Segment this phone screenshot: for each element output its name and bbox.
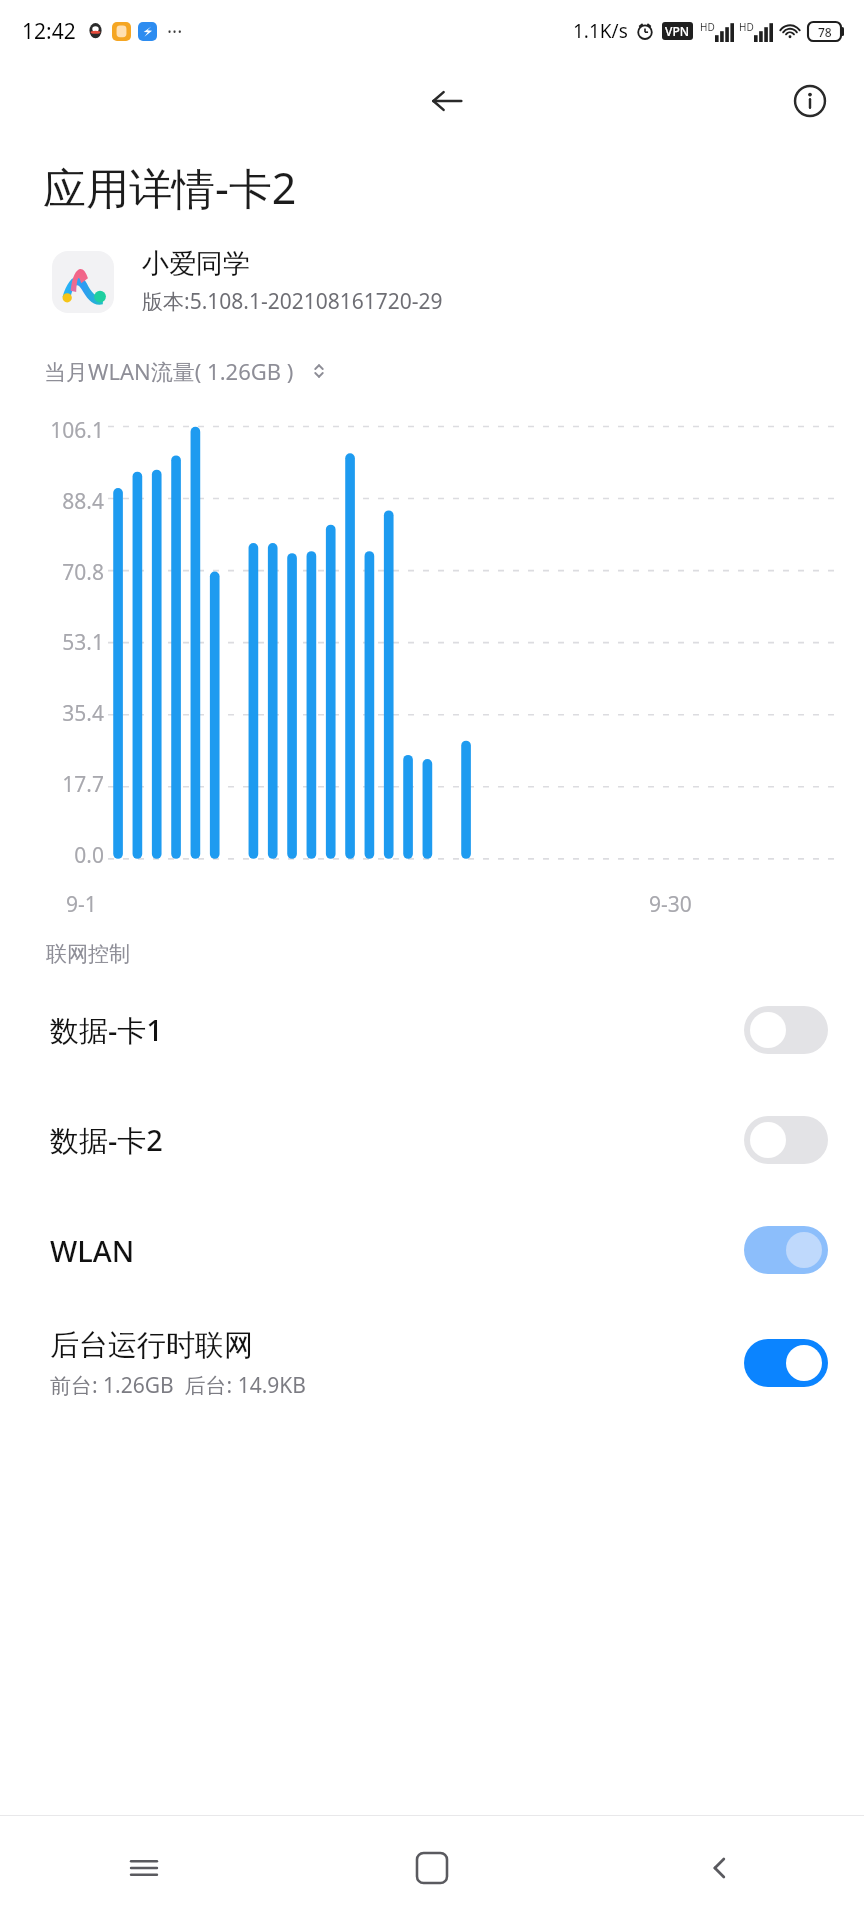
staticText: 数据-卡1 bbox=[50, 1010, 163, 1050]
staticText: 78 bbox=[818, 24, 832, 40]
staticText: 0.0 bbox=[74, 841, 104, 870]
staticText: 1.1K/s bbox=[573, 18, 628, 44]
staticText: 当月WLAN流量( 1.26GB ) bbox=[44, 356, 294, 386]
staticText: 35.4 bbox=[62, 699, 104, 728]
staticText: 应用详情-卡2 bbox=[43, 158, 297, 217]
staticText: 版本:5.108.1-202108161720-29 bbox=[142, 287, 443, 316]
staticText: 后台运行时联网 bbox=[50, 1327, 253, 1364]
staticText: 17.7 bbox=[62, 770, 104, 799]
staticText: 数据-卡2 bbox=[50, 1120, 163, 1160]
button[interactable]: Back bbox=[576, 1816, 864, 1920]
staticText: 12:42 bbox=[22, 17, 76, 46]
staticText: 88.4 bbox=[62, 487, 104, 516]
button[interactable]: 数据-卡1 bbox=[0, 975, 864, 1085]
button[interactable]: Toggle bbox=[744, 1226, 828, 1274]
staticText: 9-30 bbox=[649, 890, 692, 919]
staticText: 9-1 bbox=[66, 890, 97, 919]
staticText: 53.1 bbox=[62, 628, 104, 657]
staticText: HD bbox=[739, 20, 754, 34]
button[interactable]: 后台运行时联网 bbox=[0, 1305, 864, 1421]
button[interactable]: Toggle bbox=[744, 1116, 828, 1164]
staticText: 前台: 1.26GB 后台: 14.9KB bbox=[50, 1371, 307, 1400]
staticText: 小爱同学 bbox=[142, 247, 250, 281]
staticText: HD bbox=[700, 20, 715, 34]
staticText: VPN bbox=[665, 23, 690, 39]
button[interactable]: 数据-卡2 bbox=[0, 1085, 864, 1195]
button[interactable]: Recents bbox=[0, 1816, 288, 1920]
button[interactable]: 小爱同学 bbox=[0, 243, 864, 320]
staticText: 106.1 bbox=[50, 416, 104, 445]
button[interactable]: 当月WLAN流量( 1.26GB ) bbox=[32, 350, 342, 392]
staticText: WLAN bbox=[50, 1231, 135, 1270]
button[interactable]: WLAN bbox=[0, 1195, 864, 1305]
button[interactable]: Back bbox=[419, 73, 475, 129]
staticText: ··· bbox=[167, 19, 183, 45]
button[interactable]: Toggle bbox=[744, 1339, 828, 1387]
button[interactable]: Home bbox=[288, 1816, 576, 1920]
staticText: 联网控制 bbox=[46, 941, 130, 967]
staticText: 70.8 bbox=[62, 558, 104, 587]
button[interactable]: Info bbox=[782, 73, 838, 129]
button[interactable]: Toggle bbox=[744, 1006, 828, 1054]
